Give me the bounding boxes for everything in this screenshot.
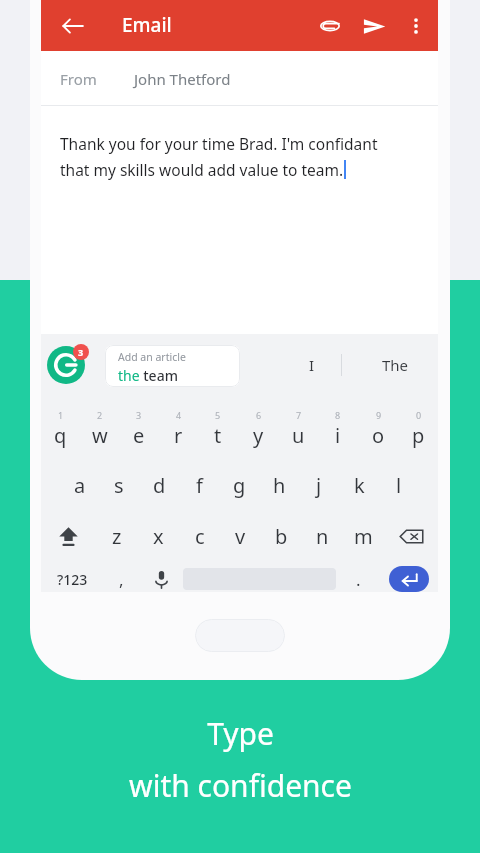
button[interactable]: l [379, 468, 419, 502]
staticText: 7 [296, 409, 302, 421]
staticText: that my skills would add value to team. [60, 159, 344, 180]
button[interactable]: k [339, 468, 379, 502]
button[interactable]: a [60, 468, 99, 502]
staticText: i [335, 422, 341, 449]
staticText: I [309, 355, 315, 375]
staticText: c [195, 523, 205, 550]
staticText: The [382, 355, 409, 375]
button[interactable]: Back [51, 4, 95, 48]
button[interactable]: d [139, 468, 179, 502]
staticText: Email [122, 12, 172, 38]
button[interactable]: 1 [41, 406, 80, 452]
staticText: s [114, 472, 124, 499]
button[interactable]: m [343, 518, 384, 554]
staticText: 2 [97, 409, 103, 421]
button[interactable]: Backspace [384, 518, 438, 554]
staticText: b [275, 523, 288, 550]
staticText: w [92, 422, 108, 449]
button[interactable]: n [302, 518, 343, 554]
staticText: n [316, 523, 329, 550]
button[interactable]: g [219, 468, 259, 502]
button[interactable]: z [96, 518, 138, 554]
staticText: t [214, 422, 222, 449]
button[interactable]: Attach file [308, 4, 352, 48]
button[interactable]: Enter [389, 566, 429, 592]
button[interactable]: c [179, 518, 220, 554]
staticText: Add an article [118, 350, 186, 364]
button[interactable]: s [99, 468, 139, 502]
staticText: z [112, 523, 122, 550]
button[interactable]: 5 [198, 406, 238, 452]
button[interactable]: , [103, 566, 139, 592]
staticText: , [119, 568, 124, 591]
staticText: m [354, 523, 373, 550]
button[interactable]: Shift [41, 518, 96, 554]
staticText: 5 [215, 409, 221, 421]
staticText: 8 [335, 409, 341, 421]
button[interactable]: 2 [80, 406, 119, 452]
staticText: p [412, 422, 425, 449]
button[interactable]: Grammarly [47, 344, 89, 386]
staticText: h [273, 472, 286, 499]
button[interactable]: x [138, 518, 179, 554]
staticText: l [396, 472, 402, 499]
button[interactable]: I [283, 345, 341, 385]
staticText: 0 [416, 409, 422, 421]
button[interactable]: 3 [119, 406, 158, 452]
button[interactable]: ?123 [41, 566, 103, 592]
staticText: 3 [78, 346, 84, 358]
staticText: v [235, 523, 246, 550]
button[interactable]: The [359, 345, 431, 385]
button[interactable]: v [220, 518, 261, 554]
staticText: 3 [136, 409, 142, 421]
button[interactable]: Voice input [139, 566, 183, 592]
staticText: u [292, 422, 305, 449]
staticText: r [174, 422, 183, 449]
button[interactable]: b [261, 518, 302, 554]
staticText: f [196, 472, 203, 499]
button[interactable]: j [299, 468, 339, 502]
button[interactable]: 0 [398, 406, 438, 452]
button[interactable]: Send [352, 4, 396, 48]
staticText: e [133, 422, 145, 449]
staticText: 6 [256, 409, 262, 421]
staticText: 4 [176, 409, 182, 421]
staticText: 1 [58, 409, 64, 421]
staticText: a [74, 472, 86, 499]
staticText: k [354, 472, 365, 499]
button[interactable]: 9 [358, 406, 398, 452]
button[interactable]: 8 [318, 406, 358, 452]
staticText: 9 [376, 409, 382, 421]
button[interactable]: More options [396, 6, 436, 46]
staticText: the team [118, 366, 178, 385]
staticText: John Thetford [134, 69, 231, 89]
button[interactable]: 6 [238, 406, 278, 452]
button[interactable]: Add an article [105, 345, 240, 387]
staticText: o [372, 422, 385, 449]
staticText: y [253, 422, 264, 449]
staticText: d [153, 472, 166, 499]
staticText: ?123 [57, 570, 88, 589]
staticText: g [233, 472, 246, 499]
staticText: x [153, 523, 164, 550]
staticText: From [60, 69, 97, 89]
staticText: q [54, 422, 67, 449]
staticText: j [316, 472, 322, 499]
staticText: with confidence [129, 765, 352, 806]
staticText: Type [207, 713, 274, 754]
button[interactable]: h [259, 468, 299, 502]
button[interactable]: 4 [158, 406, 198, 452]
button[interactable]: 7 [278, 406, 318, 452]
staticText: . [356, 568, 361, 591]
button[interactable]: . [336, 566, 380, 592]
button[interactable]: f [179, 468, 219, 502]
staticText: Thank you for your time Brad. I'm confid… [60, 133, 378, 154]
